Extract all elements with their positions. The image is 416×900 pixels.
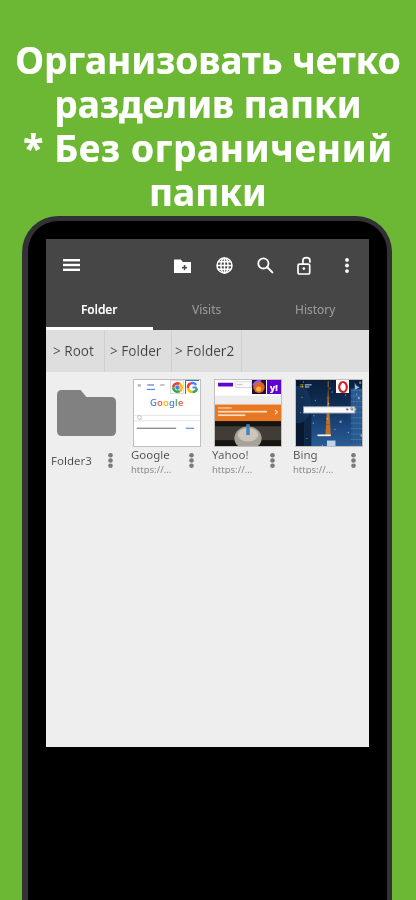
staticText: * Без ограничений (0, 122, 416, 172)
staticText: > Folder2 (175, 342, 235, 360)
button[interactable]: Bing (288, 372, 369, 474)
staticText: Bing (293, 447, 318, 463)
staticText: o (163, 396, 169, 409)
staticText: y! (270, 381, 278, 393)
staticText: Организовать четко (0, 34, 416, 84)
button[interactable]: Search (251, 251, 279, 279)
staticText: https://... (212, 463, 253, 474)
staticText: Folder (81, 301, 118, 317)
staticText: l (175, 396, 178, 409)
staticText: g (169, 396, 175, 409)
staticText: https://... (293, 463, 334, 474)
staticText: Google (131, 447, 170, 463)
button[interactable]: > Root (46, 330, 104, 372)
button[interactable]: > Folder (105, 330, 171, 372)
staticText: o (157, 396, 163, 409)
button[interactable]: Browser (210, 251, 238, 279)
button[interactable]: More for Folder3 (105, 447, 115, 474)
button[interactable]: > Folder2 (172, 330, 241, 372)
staticText: e (178, 396, 184, 409)
staticText: разделив папки (0, 78, 416, 128)
button[interactable]: Visits (153, 290, 261, 330)
button[interactable]: Unlock (291, 251, 319, 279)
button[interactable]: More for Google (186, 447, 196, 474)
staticText: https://... (131, 463, 172, 474)
button[interactable]: Folder (46, 290, 153, 330)
button[interactable]: More options (333, 251, 361, 279)
button[interactable]: Menu (57, 251, 85, 279)
button[interactable]: Folder3 (46, 372, 126, 474)
staticText: Visits (192, 301, 222, 317)
button[interactable]: G (126, 372, 207, 474)
staticText: Yahoo! (212, 447, 249, 463)
staticText: G (150, 396, 157, 409)
button[interactable]: More for Bing (348, 447, 358, 474)
staticText: Folder3 (51, 453, 92, 469)
button[interactable]: History (261, 290, 369, 330)
staticText: > Folder (110, 342, 162, 360)
button[interactable]: More for Yahoo! (267, 447, 277, 474)
staticText: папки (0, 166, 416, 216)
button[interactable]: y! (207, 372, 288, 474)
staticText: History (295, 301, 336, 317)
staticText: > Root (53, 342, 94, 360)
button[interactable]: New folder (168, 251, 196, 279)
